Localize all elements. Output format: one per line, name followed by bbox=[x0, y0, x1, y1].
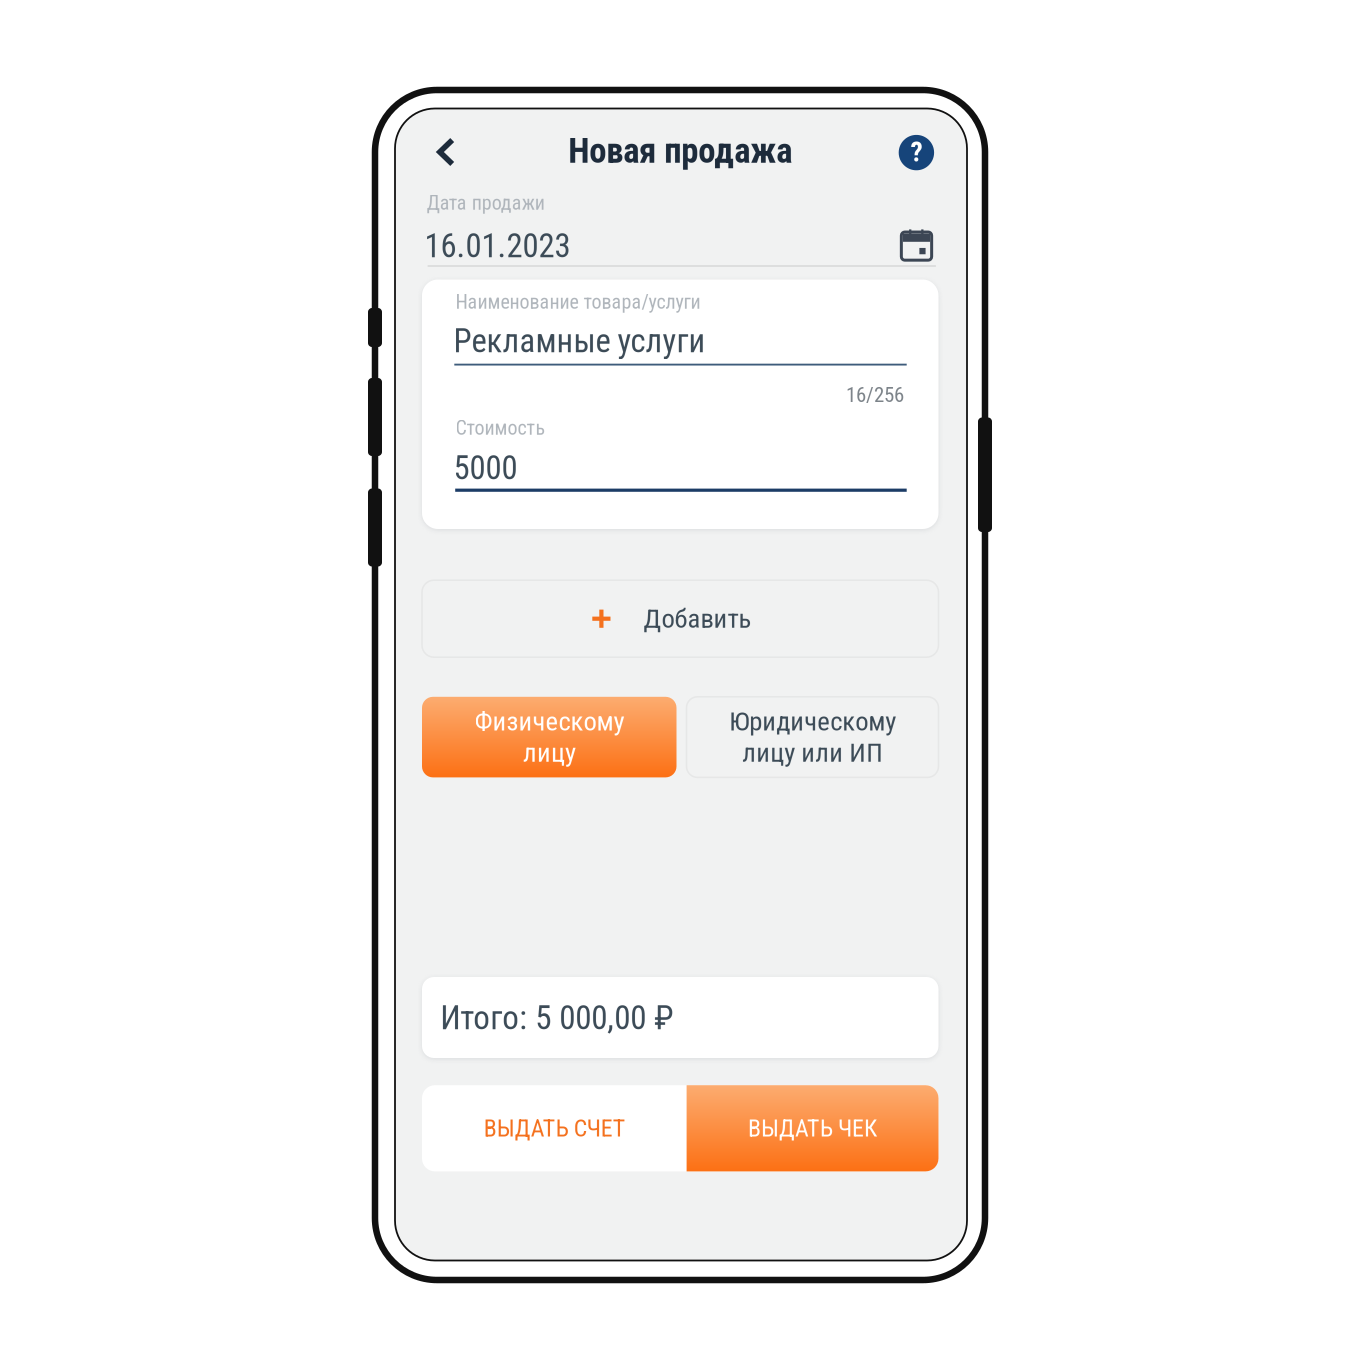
button[interactable]: 5000 bbox=[453, 453, 905, 483]
button[interactable]: Физическому лицу bbox=[422, 697, 676, 777]
staticText: Новая продажа bbox=[568, 131, 792, 171]
staticText: Итого: 5 000,00 ₽ bbox=[440, 999, 673, 1037]
staticText: Физическому лицу bbox=[474, 706, 624, 768]
button[interactable]: Добавить bbox=[422, 580, 938, 657]
button[interactable]: Back bbox=[424, 129, 468, 175]
button[interactable]: Юридическому лицу или ИП bbox=[686, 697, 938, 777]
staticText: ВЫДАТЬ ЧЕК bbox=[748, 1114, 877, 1142]
button[interactable]: ВЫДАТЬ СЧЕТ bbox=[422, 1085, 687, 1171]
button[interactable]: Рекламные услуги bbox=[453, 326, 906, 356]
button[interactable]: ВЫДАТЬ ЧЕК bbox=[687, 1085, 938, 1171]
button[interactable]: Help bbox=[899, 135, 934, 170]
button[interactable]: Choose date bbox=[897, 224, 936, 263]
staticText: ? bbox=[910, 136, 922, 168]
staticText: Наименование товара/услуги bbox=[456, 290, 701, 314]
staticText: Добавить bbox=[644, 603, 752, 634]
button[interactable]: 16.01.2023 bbox=[424, 231, 764, 261]
staticText: ВЫДАТЬ СЧЕТ bbox=[484, 1114, 625, 1142]
staticText: 16/256 bbox=[846, 383, 904, 407]
staticText: 5000 bbox=[453, 449, 517, 487]
staticText: Дата продажи bbox=[427, 191, 545, 215]
staticText: Юридическому лицу или ИП bbox=[729, 706, 896, 768]
staticText: Рекламные услуги bbox=[453, 322, 705, 360]
staticText: Стоимость bbox=[456, 416, 546, 440]
staticText: 16.01.2023 bbox=[424, 227, 570, 265]
